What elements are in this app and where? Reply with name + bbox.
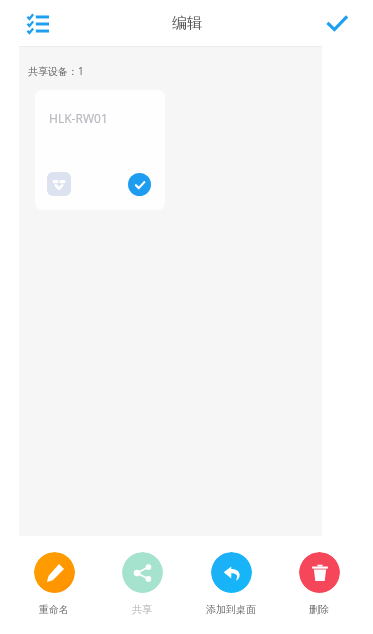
button[interactable]: Select all <box>18 4 58 44</box>
staticText: 删除 <box>309 603 329 616</box>
button[interactable]: Rename <box>19 552 89 616</box>
staticText: 添加到桌面 <box>206 603 256 616</box>
button[interactable]: Confirm <box>317 4 357 44</box>
button[interactable]: Share <box>107 552 177 616</box>
button[interactable]: Selected <box>128 173 151 196</box>
button[interactable]: Delete <box>284 552 354 616</box>
staticText: 共享设备：1 <box>28 64 84 78</box>
button[interactable]: Add to home screen <box>196 552 266 616</box>
staticText: HLK-RW01 <box>49 110 108 126</box>
staticText: 编辑 <box>172 14 202 33</box>
staticText: 重命名 <box>39 603 69 616</box>
staticText: 共享 <box>132 603 152 616</box>
button[interactable]: HLK-RW01 <box>35 90 165 210</box>
